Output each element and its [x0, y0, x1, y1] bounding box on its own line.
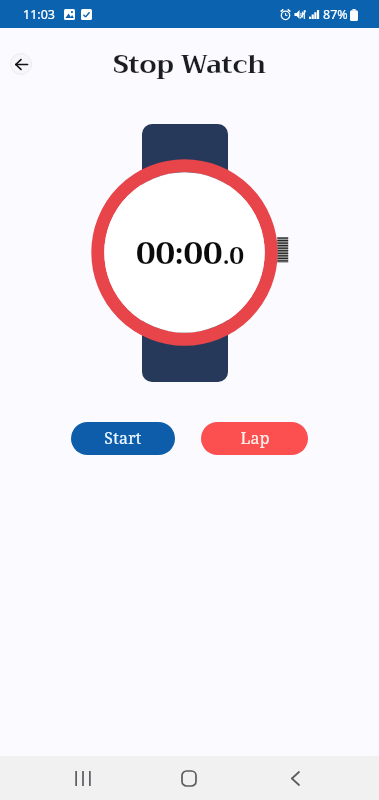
- button[interactable]: Start: [71, 422, 175, 455]
- button[interactable]: Back: [272, 756, 318, 800]
- button[interactable]: Lap: [201, 422, 308, 455]
- button[interactable]: Back: [10, 53, 32, 75]
- button[interactable]: Recent apps: [60, 756, 106, 800]
- staticText: Lap: [240, 427, 270, 449]
- staticText: .0: [223, 236, 245, 277]
- staticText: 00:00: [136, 227, 223, 281]
- staticText: Stop Watch: [113, 41, 267, 81]
- staticText: 87%: [323, 6, 348, 23]
- staticText: Start: [104, 427, 142, 449]
- button[interactable]: Home: [166, 756, 212, 800]
- staticText: 11:03: [23, 6, 55, 23]
